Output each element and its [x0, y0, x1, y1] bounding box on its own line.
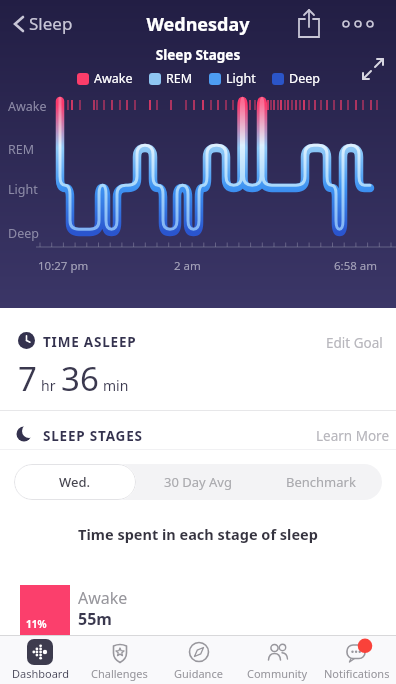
button[interactable]: Edit Goal	[320, 328, 389, 358]
staticText: 11%	[26, 617, 47, 631]
staticText: 7	[18, 356, 37, 401]
button[interactable]: Learn More	[310, 421, 396, 451]
staticText: 30 Day Avg	[164, 473, 232, 491]
staticText: Light	[8, 181, 38, 198]
button[interactable]: Guidance	[159, 636, 238, 684]
button[interactable]	[294, 6, 326, 42]
button[interactable]: Dashboard	[0, 636, 80, 684]
staticText: Wed.	[59, 473, 91, 491]
button[interactable]: 30 Day Avg	[136, 464, 259, 500]
staticText: Guidance	[174, 666, 223, 681]
staticText: SLEEP STAGES	[43, 427, 143, 445]
staticText: Sleep Stages	[0, 46, 396, 64]
staticText: Notifications	[324, 666, 390, 681]
staticText: Edit Goal	[326, 334, 383, 352]
staticText: Challenges	[91, 666, 148, 681]
staticText: 10:27 pm	[38, 258, 89, 274]
staticText: hr	[41, 376, 56, 395]
staticText: Time spent in each stage of sleep	[0, 524, 396, 544]
staticText: Community	[247, 666, 308, 681]
button[interactable]	[338, 14, 382, 34]
staticText: 55m	[78, 608, 112, 630]
staticText: Deep	[8, 225, 39, 242]
staticText: 36	[61, 356, 99, 401]
button[interactable]: Community	[238, 636, 317, 684]
staticText: 2 am	[174, 258, 201, 274]
staticText: REM	[8, 141, 35, 158]
button[interactable]: Sleep	[8, 8, 77, 39]
button[interactable]: Benchmark	[259, 464, 382, 500]
button[interactable]: Wed.	[14, 464, 136, 500]
staticText: TIME ASLEEP	[43, 333, 137, 351]
staticText: min	[103, 376, 129, 395]
staticText: Dashboard	[12, 666, 69, 681]
staticText: Awake	[8, 98, 47, 115]
staticText: Wednesday	[0, 12, 396, 37]
button[interactable]: Challenges	[80, 636, 159, 684]
button[interactable]: Notifications	[317, 636, 396, 684]
staticText: Light	[226, 70, 256, 87]
staticText: 6:58 am	[334, 258, 378, 274]
staticText: Benchmark	[286, 473, 356, 491]
staticText: Awake	[78, 587, 128, 609]
staticText: REM	[166, 70, 193, 87]
staticText: Sleep	[29, 12, 73, 35]
button[interactable]	[358, 54, 388, 84]
staticText: Awake	[94, 70, 133, 87]
staticText: Learn More	[316, 427, 390, 445]
staticText: Deep	[289, 70, 320, 87]
